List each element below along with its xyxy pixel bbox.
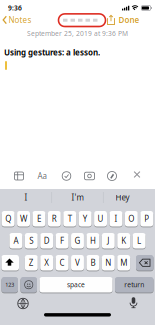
button[interactable]: U <box>94 210 107 227</box>
staticText: M <box>120 257 127 268</box>
button[interactable]: Done <box>118 15 139 25</box>
button[interactable]: G <box>71 232 84 249</box>
button[interactable]: space <box>39 276 112 293</box>
button[interactable]: J <box>102 232 115 249</box>
button[interactable]: Delete <box>136 254 153 271</box>
staticText: Done <box>118 15 139 25</box>
staticText: B <box>90 257 95 268</box>
button[interactable]: Insert table <box>13 170 25 182</box>
button[interactable]: C <box>56 254 68 271</box>
button[interactable]: Y <box>79 210 92 227</box>
staticText: Z <box>29 257 34 268</box>
button[interactable]: D <box>40 232 53 249</box>
button[interactable]: Checklist <box>60 170 72 182</box>
staticText: September 25, 2019 at 9:36 PM <box>27 29 128 38</box>
staticText: R <box>52 213 57 224</box>
staticText: N <box>105 257 111 268</box>
staticText: O <box>128 213 134 224</box>
button[interactable]: M <box>117 254 130 271</box>
button[interactable]: S <box>25 232 38 249</box>
button[interactable]: F <box>56 232 68 249</box>
button[interactable]: Dictate <box>127 296 139 309</box>
staticText: E <box>37 213 41 224</box>
button[interactable]: Q <box>2 210 15 227</box>
staticText: V <box>75 257 80 268</box>
staticText: Hey <box>115 192 129 203</box>
staticText: 123 <box>5 281 14 288</box>
button[interactable]: E <box>32 210 45 227</box>
staticText: D <box>44 235 50 246</box>
button[interactable]: R <box>48 210 61 227</box>
staticText: W <box>20 213 27 224</box>
button[interactable]: A <box>9 232 22 249</box>
button[interactable]: Notes <box>2 15 31 25</box>
staticText: C <box>60 257 65 268</box>
button[interactable]: Insert photo <box>83 170 95 182</box>
staticText: T <box>68 213 72 224</box>
staticText: A <box>13 235 18 246</box>
staticText: P <box>144 213 149 224</box>
button[interactable]: N <box>102 254 115 271</box>
button[interactable]: Next keyboard <box>16 297 29 310</box>
button[interactable]: Share <box>106 14 115 25</box>
button[interactable]: O <box>125 210 138 227</box>
button[interactable]: V <box>71 254 84 271</box>
staticText: U <box>97 213 103 224</box>
staticText: space <box>67 280 85 289</box>
button[interactable]: K <box>117 232 130 249</box>
staticText: G <box>74 235 80 246</box>
staticText: H <box>90 235 96 246</box>
button[interactable]: B <box>86 254 99 271</box>
button[interactable]: X <box>40 254 53 271</box>
button[interactable]: Dismiss keyboard <box>133 171 143 181</box>
button[interactable]: Emoji <box>20 276 37 293</box>
staticText: K <box>121 235 126 246</box>
staticText: X <box>44 257 49 268</box>
button[interactable]: return <box>115 276 153 293</box>
button[interactable]: H <box>86 232 99 249</box>
button[interactable]: W <box>17 210 30 227</box>
button[interactable]: T <box>63 210 76 227</box>
button[interactable]: Hey <box>99 190 145 205</box>
button[interactable]: L <box>133 232 146 249</box>
staticText: I'm <box>71 192 83 203</box>
button[interactable]: I'm <box>54 190 100 205</box>
button[interactable]: Z <box>25 254 38 271</box>
staticText: L <box>137 235 141 246</box>
staticText: I <box>24 192 27 203</box>
button[interactable]: P <box>140 210 153 227</box>
staticText: Using gestures: a lesson. <box>4 47 100 58</box>
staticText: return <box>124 280 144 289</box>
staticText: F <box>60 235 64 246</box>
button[interactable]: 123 <box>1 276 18 293</box>
button[interactable]: Text formatting <box>35 170 49 182</box>
staticText: I <box>114 213 117 224</box>
button[interactable]: Shift <box>1 254 19 271</box>
staticText: Q <box>5 213 11 224</box>
staticText: Aa <box>37 171 46 181</box>
staticText: Notes <box>8 15 31 25</box>
button[interactable]: I <box>109 210 122 227</box>
staticText: Y <box>83 213 88 224</box>
staticText: J <box>107 235 109 246</box>
button[interactable]: I <box>3 190 49 205</box>
button[interactable]: Markup <box>106 170 118 182</box>
staticText: S <box>29 235 33 246</box>
staticText: 9:36 <box>8 4 22 12</box>
